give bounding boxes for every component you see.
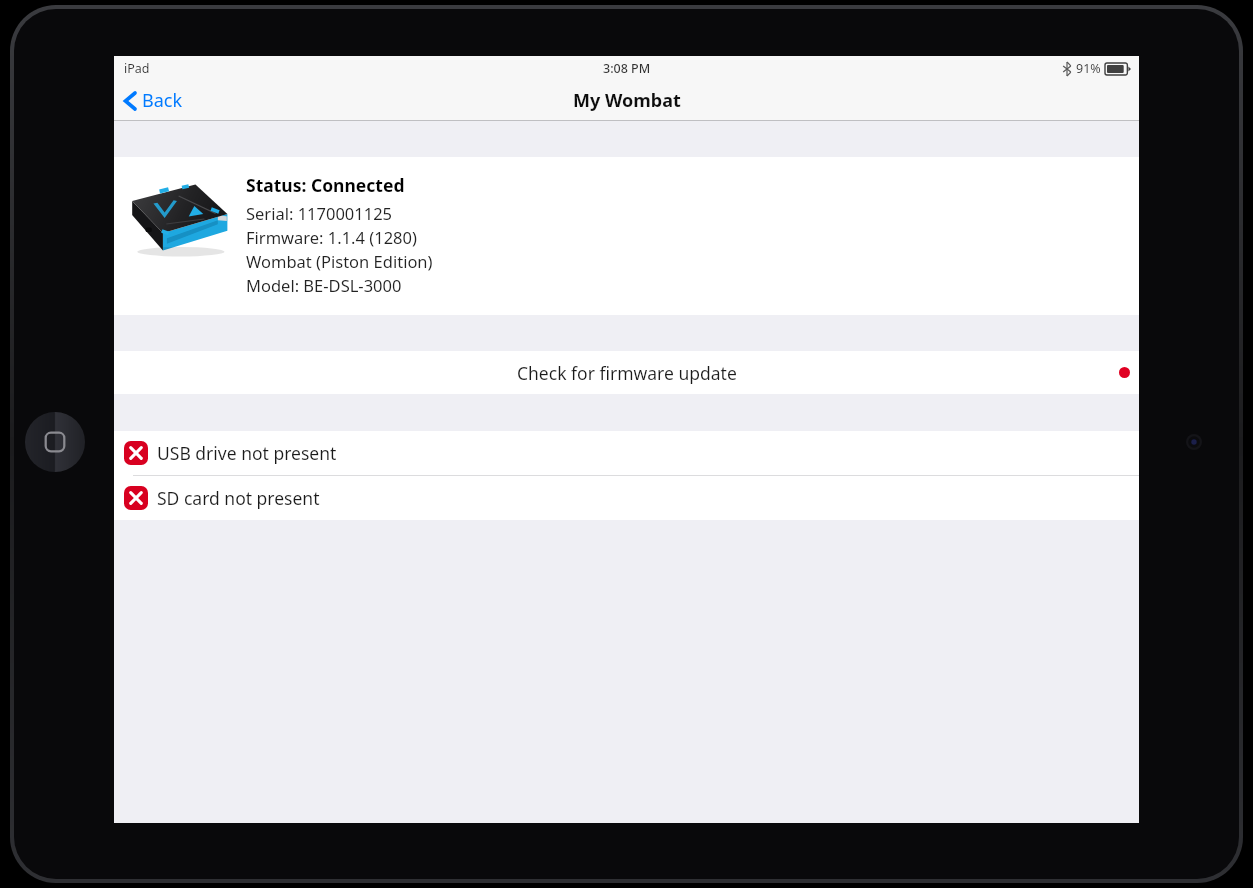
other: Home (25, 412, 85, 472)
staticText: Model: BE-DSL-3000 (246, 274, 402, 296)
button[interactable]: USB drive not present (114, 431, 1139, 475)
button[interactable]: SD card not present (114, 476, 1139, 520)
staticText: Check for firmware update (517, 361, 737, 385)
staticText: 3:08 PM (603, 60, 651, 77)
staticText: Status: Connected (246, 173, 405, 197)
staticText: My Wombat (573, 88, 681, 113)
staticText: Serial: 1170001125 (246, 202, 393, 224)
staticText: Firmware: 1.1.4 (1280) (246, 226, 417, 248)
staticText: Wombat (Piston Edition) (246, 250, 433, 272)
button[interactable]: Check for firmware update (114, 351, 1139, 394)
staticText: Back (142, 88, 183, 113)
staticText: USB drive not present (157, 441, 337, 465)
staticText: SD card not present (157, 486, 320, 510)
staticText: 91% (1076, 60, 1101, 77)
button[interactable]: Back (114, 82, 193, 119)
staticText: iPad (124, 60, 150, 77)
